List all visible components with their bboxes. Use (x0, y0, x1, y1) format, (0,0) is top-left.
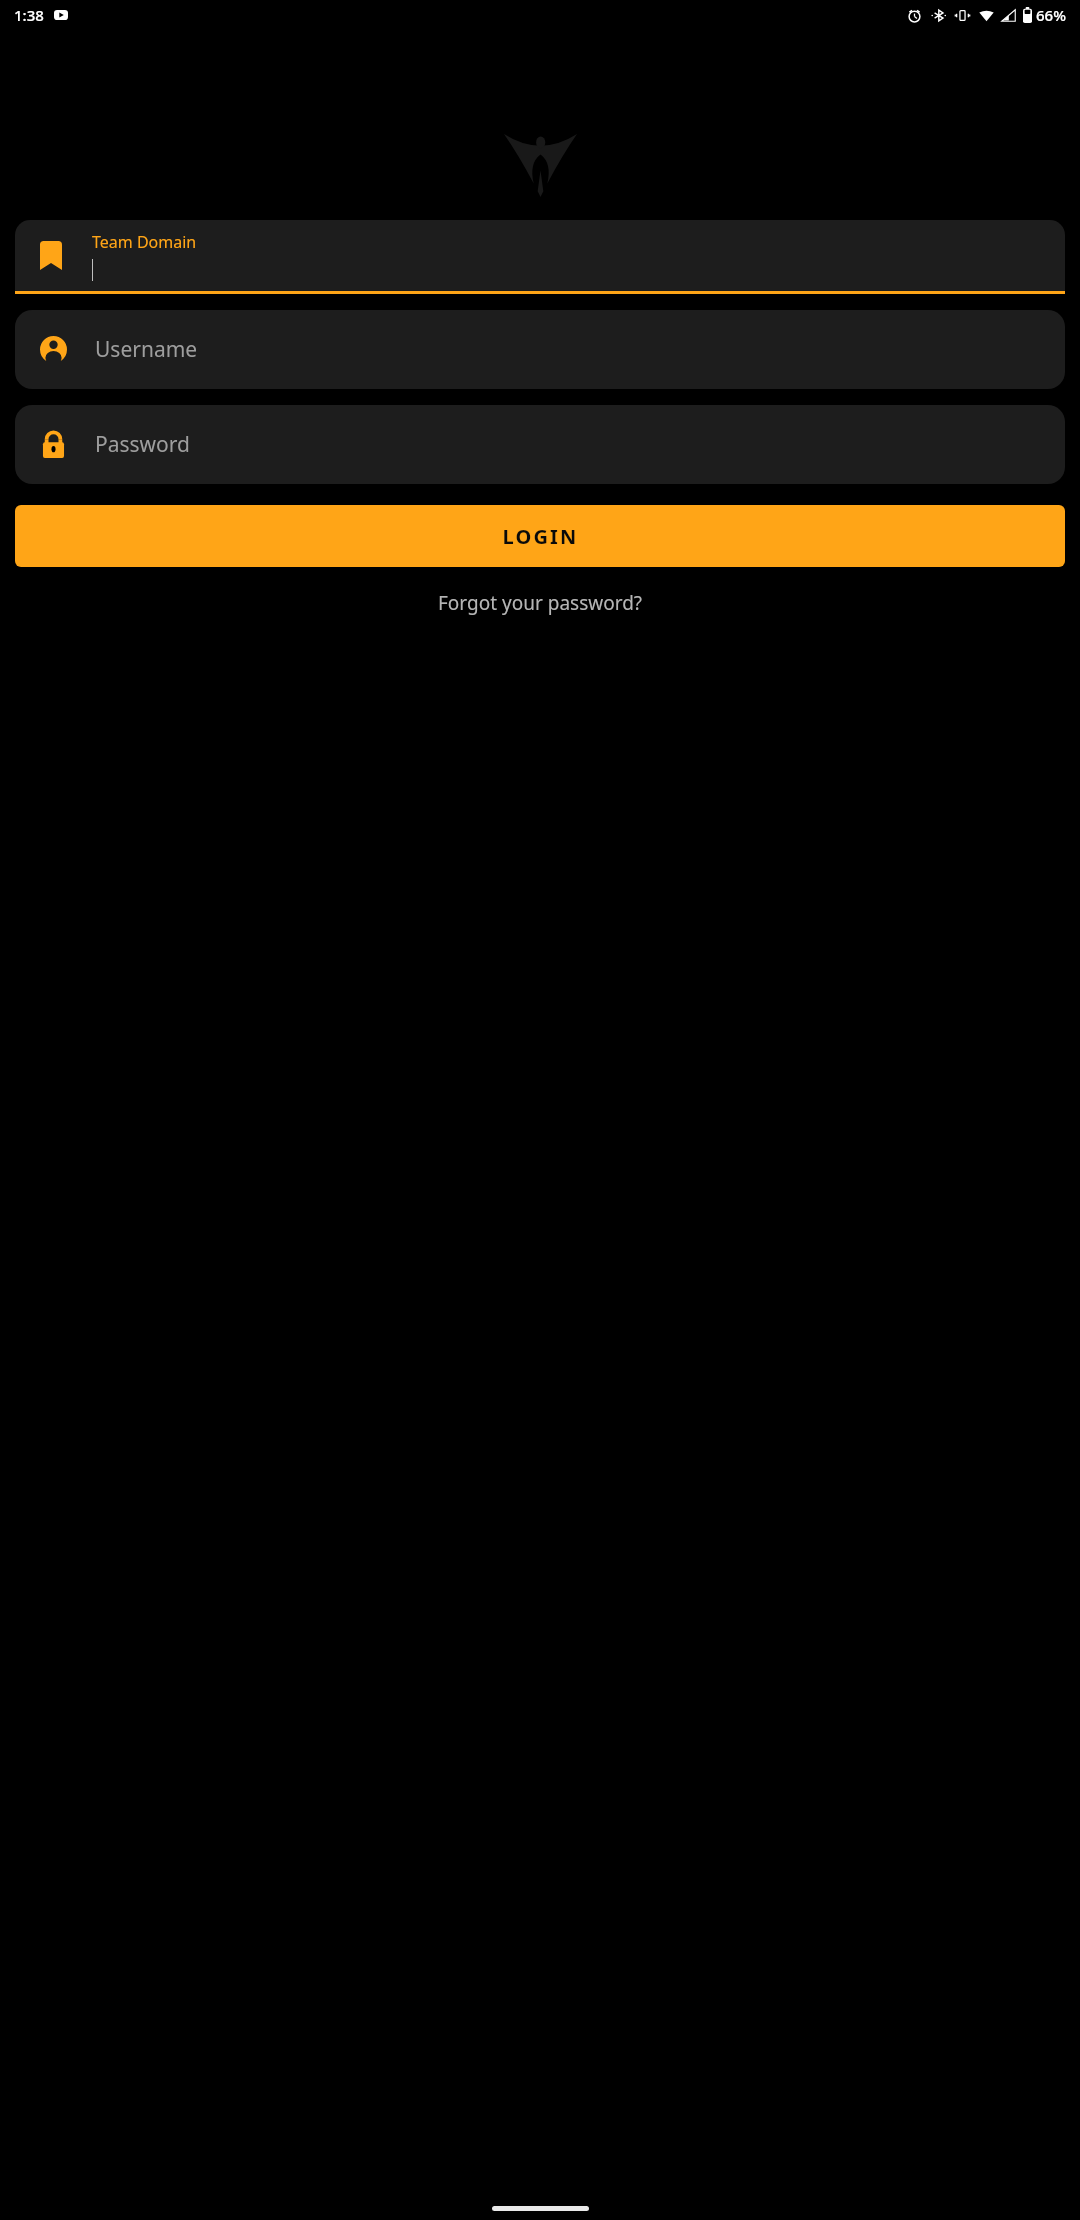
staticText: Password (95, 430, 190, 459)
staticText: Username (95, 335, 198, 364)
staticText: Team Domain (92, 231, 197, 253)
other: Username (40, 336, 67, 363)
button[interactable]: Forgot your password? (15, 581, 1065, 625)
staticText: LOGIN (502, 523, 579, 550)
other: Password (40, 431, 67, 458)
staticText: 1:38 (14, 5, 44, 25)
staticText: 66% (1036, 5, 1066, 25)
button[interactable]: LOGIN (15, 505, 1065, 567)
button[interactable]: Team Domain (15, 220, 1065, 294)
button[interactable]: Username (15, 310, 1065, 389)
button[interactable]: Password (15, 405, 1065, 484)
staticText: Forgot your password? (438, 590, 643, 616)
